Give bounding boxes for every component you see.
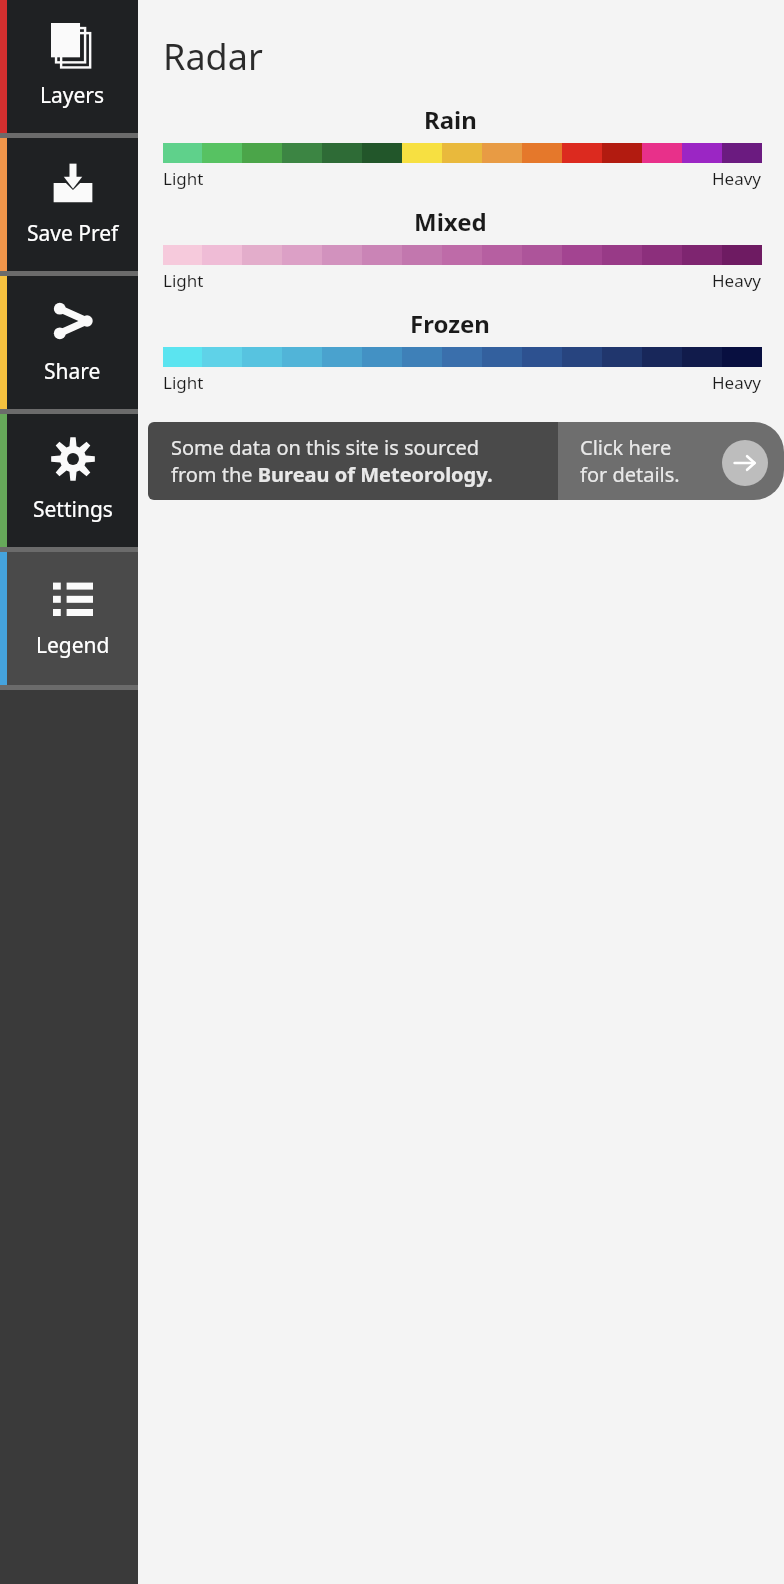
staticText: Light xyxy=(163,269,204,292)
staticText: Save Pref xyxy=(27,219,119,248)
other: Share xyxy=(51,299,95,343)
staticText: Frozen xyxy=(410,307,490,340)
button[interactable]: Layers xyxy=(0,0,138,133)
button[interactable]: Legend xyxy=(0,552,138,685)
staticText: Settings xyxy=(33,495,113,524)
staticText: Heavy xyxy=(712,371,762,394)
staticText: Share xyxy=(44,357,101,386)
button[interactable]: Some data on this site is sourced from t… xyxy=(148,422,558,500)
staticText: Light xyxy=(163,371,204,394)
button[interactable]: Share xyxy=(0,276,138,409)
button[interactable]: Save preferences xyxy=(0,138,138,271)
staticText: Mixed xyxy=(414,205,487,238)
staticText: Light xyxy=(163,167,204,190)
button[interactable]: Settings xyxy=(0,414,138,547)
button[interactable]: Click here for details. xyxy=(558,422,784,500)
staticText: Legend xyxy=(36,631,110,660)
other: Legend xyxy=(53,577,93,617)
staticText: Layers xyxy=(40,81,105,110)
staticText: Heavy xyxy=(712,269,762,292)
other: Settings xyxy=(51,437,95,481)
staticText: Click here for details. xyxy=(580,434,680,488)
button[interactable]: Details xyxy=(722,440,768,486)
other: Save preferences xyxy=(51,161,95,205)
staticText: Radar xyxy=(163,32,263,81)
staticText: Some data on this site is sourced from t… xyxy=(171,434,493,488)
staticText: Heavy xyxy=(712,167,762,190)
other: Layers xyxy=(51,23,95,67)
staticText: Rain xyxy=(424,103,477,136)
